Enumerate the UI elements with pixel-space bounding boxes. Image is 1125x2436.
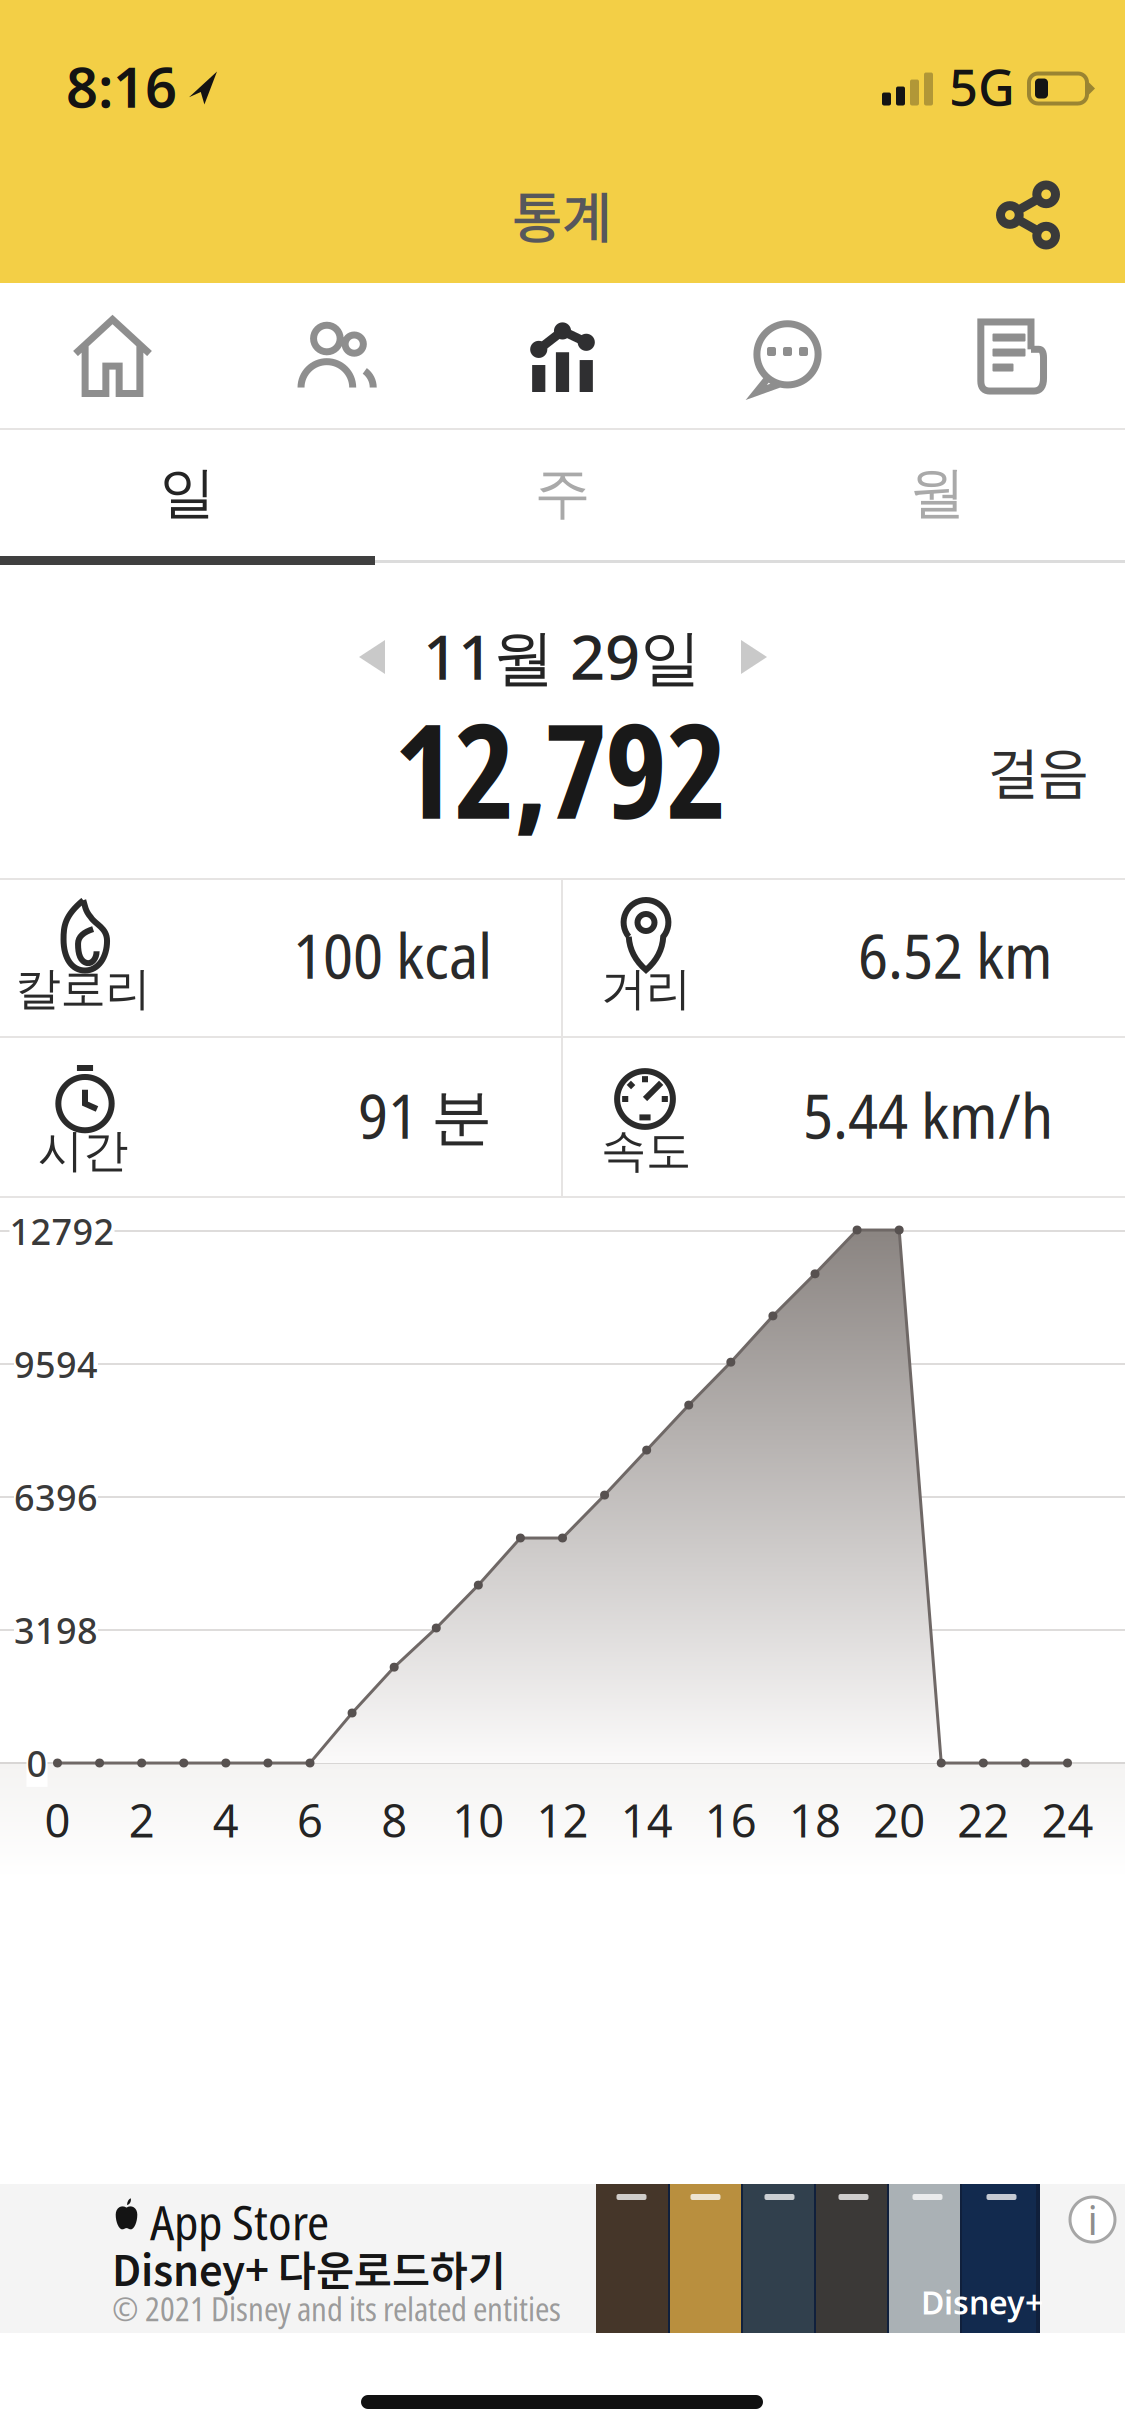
button[interactable]: 월 — [750, 430, 1125, 556]
staticText: 걸음 — [988, 731, 1088, 811]
staticText: 9594 — [14, 1340, 98, 1388]
staticText: 거리 — [601, 961, 691, 1017]
staticText: 0 — [26, 1739, 47, 1787]
staticText: 칼로리 — [15, 961, 150, 1017]
staticText: 20 — [873, 1790, 925, 1850]
staticText: 통계 — [512, 174, 612, 254]
button[interactable]: Statistics — [450, 283, 675, 430]
staticText: 12 — [536, 1790, 588, 1850]
staticText: 8 — [381, 1790, 407, 1850]
button[interactable]: 주 — [375, 430, 750, 556]
staticText: 8:16 — [66, 49, 177, 123]
staticText: 5G — [949, 52, 1015, 120]
staticText: 3198 — [14, 1606, 98, 1654]
button[interactable]: 일 — [0, 430, 375, 556]
button[interactable]: Chat — [675, 283, 900, 430]
button[interactable]: Home — [0, 283, 225, 430]
staticText: 6396 — [14, 1473, 98, 1521]
staticText: 일 — [159, 459, 215, 527]
staticText: 2 — [129, 1790, 155, 1850]
staticText: 월 — [909, 459, 965, 527]
staticText: 100 kcal — [293, 913, 492, 997]
staticText: 6 — [297, 1790, 323, 1850]
staticText: 12792 — [9, 1207, 114, 1255]
staticText: 주 — [534, 459, 590, 527]
staticText: 22 — [957, 1790, 1009, 1850]
staticText: 11월 29일 — [423, 615, 701, 697]
button[interactable]: Disney+ advertisement — [0, 2184, 1125, 2333]
staticText: 10 — [452, 1790, 504, 1850]
staticText: 14 — [621, 1790, 673, 1850]
staticText: 24 — [1041, 1790, 1093, 1850]
staticText: 16 — [705, 1790, 757, 1850]
staticText: 시간 — [38, 1123, 128, 1179]
staticText: 18 — [789, 1790, 841, 1850]
button[interactable]: News — [900, 283, 1125, 430]
staticText: i — [1087, 2193, 1097, 2246]
staticText: © 2021 Disney and its related entities — [112, 2287, 561, 2331]
staticText: 12,792 — [394, 679, 726, 857]
staticText: Disney+ 다운로드하기 — [112, 2238, 506, 2298]
staticText: 0 — [44, 1790, 70, 1850]
button[interactable]: Share — [984, 169, 1071, 261]
staticText: Disney+ — [921, 2281, 1043, 2323]
staticText: 91 분 — [358, 1073, 492, 1157]
staticText: 4 — [213, 1790, 239, 1850]
button[interactable]: Next day — [721, 620, 787, 694]
staticText: 5.44 km/h — [803, 1073, 1053, 1157]
staticText: 속도 — [601, 1123, 691, 1179]
button[interactable]: Previous day — [339, 620, 405, 694]
staticText: 6.52 km — [858, 913, 1053, 997]
button[interactable]: Friends — [225, 283, 450, 430]
staticText: App Store — [150, 2189, 329, 2254]
